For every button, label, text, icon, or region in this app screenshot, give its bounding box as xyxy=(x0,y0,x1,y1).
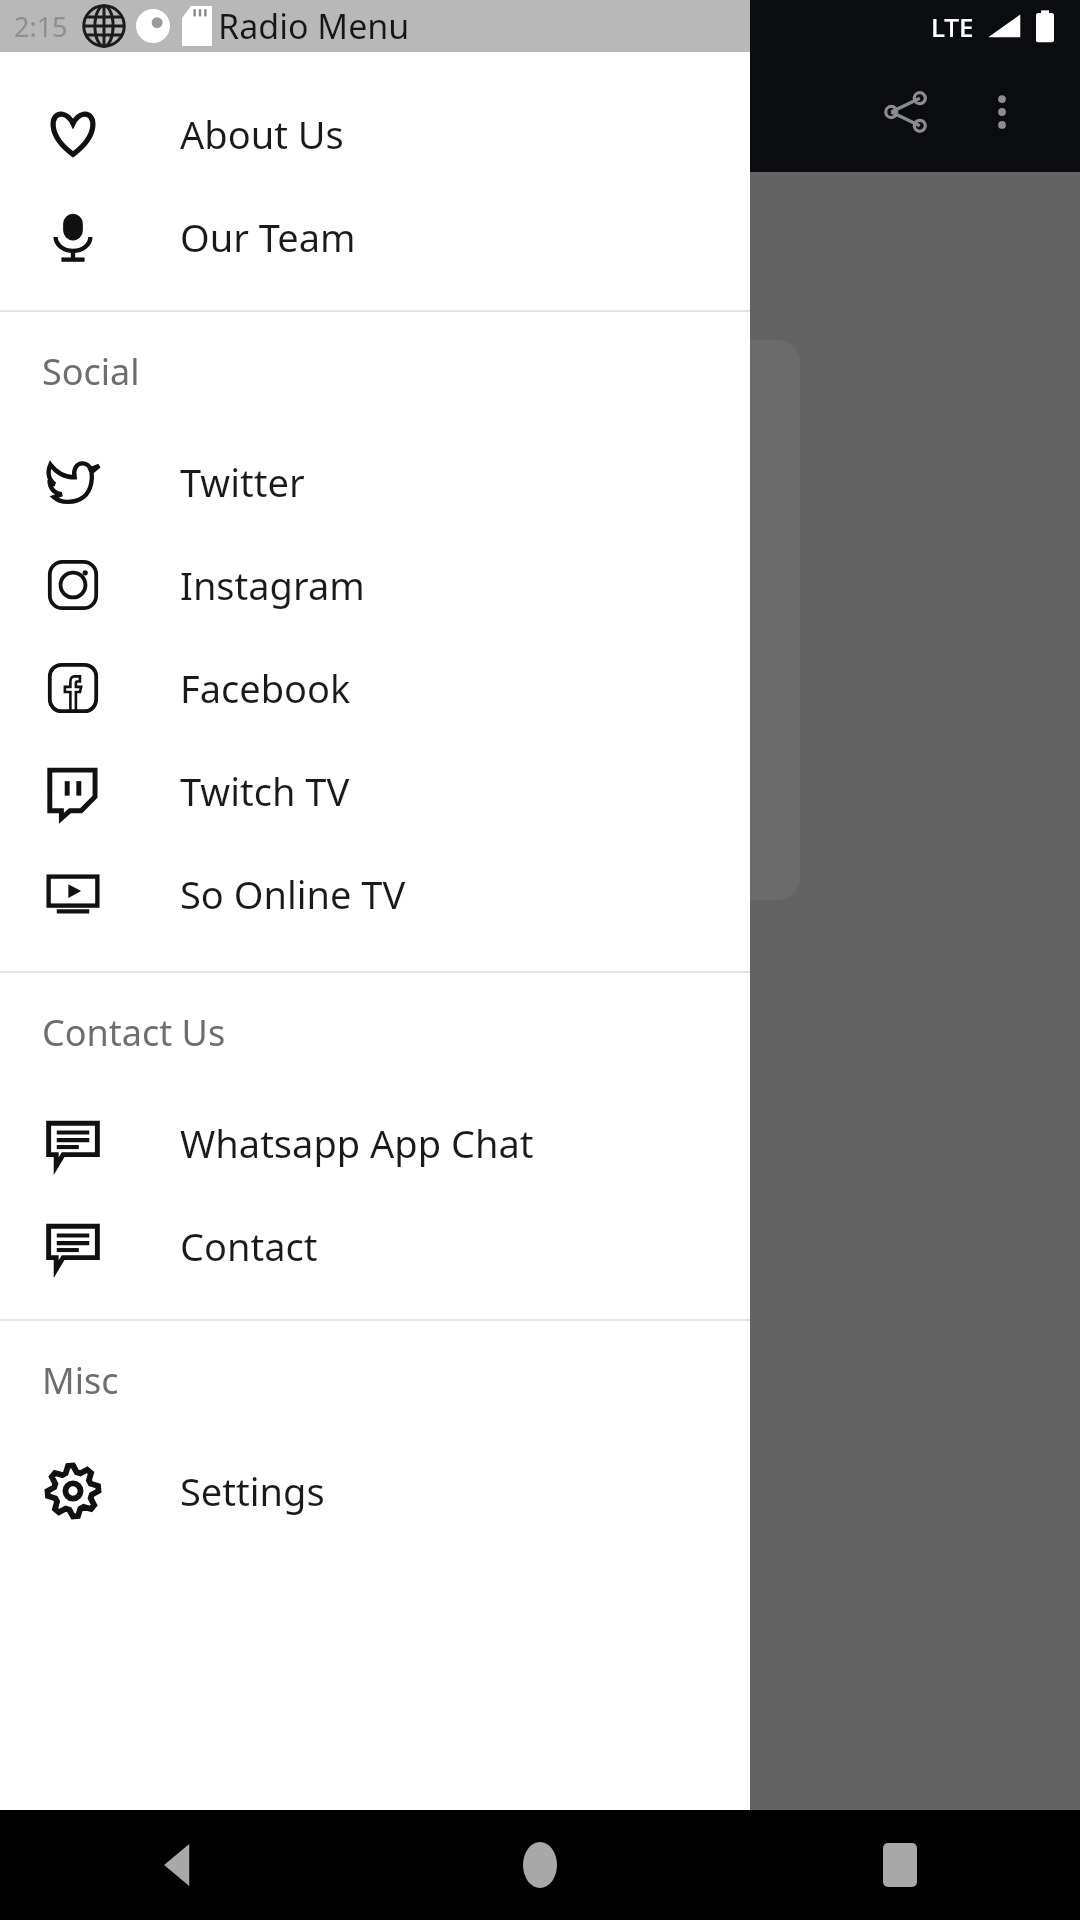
button[interactable]: Twitter xyxy=(0,430,750,533)
button[interactable]: Our Team xyxy=(0,185,750,288)
button[interactable]: Home xyxy=(360,1810,720,1920)
staticText: LTE xyxy=(931,9,974,44)
staticText: Facebook xyxy=(180,662,351,714)
staticText: Settings xyxy=(180,1465,325,1517)
button[interactable]: Twitch TV xyxy=(0,739,750,842)
staticText: Twitter xyxy=(180,456,305,508)
staticText: Instagram xyxy=(180,559,365,611)
staticText: 2:15 xyxy=(14,8,68,45)
button[interactable]: Recent apps xyxy=(720,1810,1080,1920)
staticText: Social xyxy=(42,347,140,396)
staticText: Radio Menu xyxy=(218,3,410,49)
button[interactable]: So Online TV xyxy=(0,842,750,945)
button[interactable]: More options xyxy=(954,64,1050,160)
button[interactable]: Whatsapp App Chat xyxy=(0,1091,750,1194)
button[interactable]: Back xyxy=(0,1810,360,1920)
staticText: So Online TV xyxy=(180,868,406,920)
staticText: Contact Us xyxy=(42,1008,226,1057)
staticText: Whatsapp App Chat xyxy=(180,1117,534,1169)
staticText: Twitch TV xyxy=(180,765,350,817)
button[interactable]: About Us xyxy=(0,82,750,185)
button[interactable]: Facebook xyxy=(0,636,750,739)
button[interactable]: Contact xyxy=(0,1194,750,1297)
staticText: Our Team xyxy=(180,211,356,263)
button[interactable]: Settings xyxy=(0,1439,750,1542)
staticText: About Us xyxy=(180,108,344,160)
staticText: Misc xyxy=(42,1356,119,1405)
button[interactable]: Instagram xyxy=(0,533,750,636)
button[interactable]: Share xyxy=(858,64,954,160)
staticText: Contact xyxy=(180,1220,318,1272)
